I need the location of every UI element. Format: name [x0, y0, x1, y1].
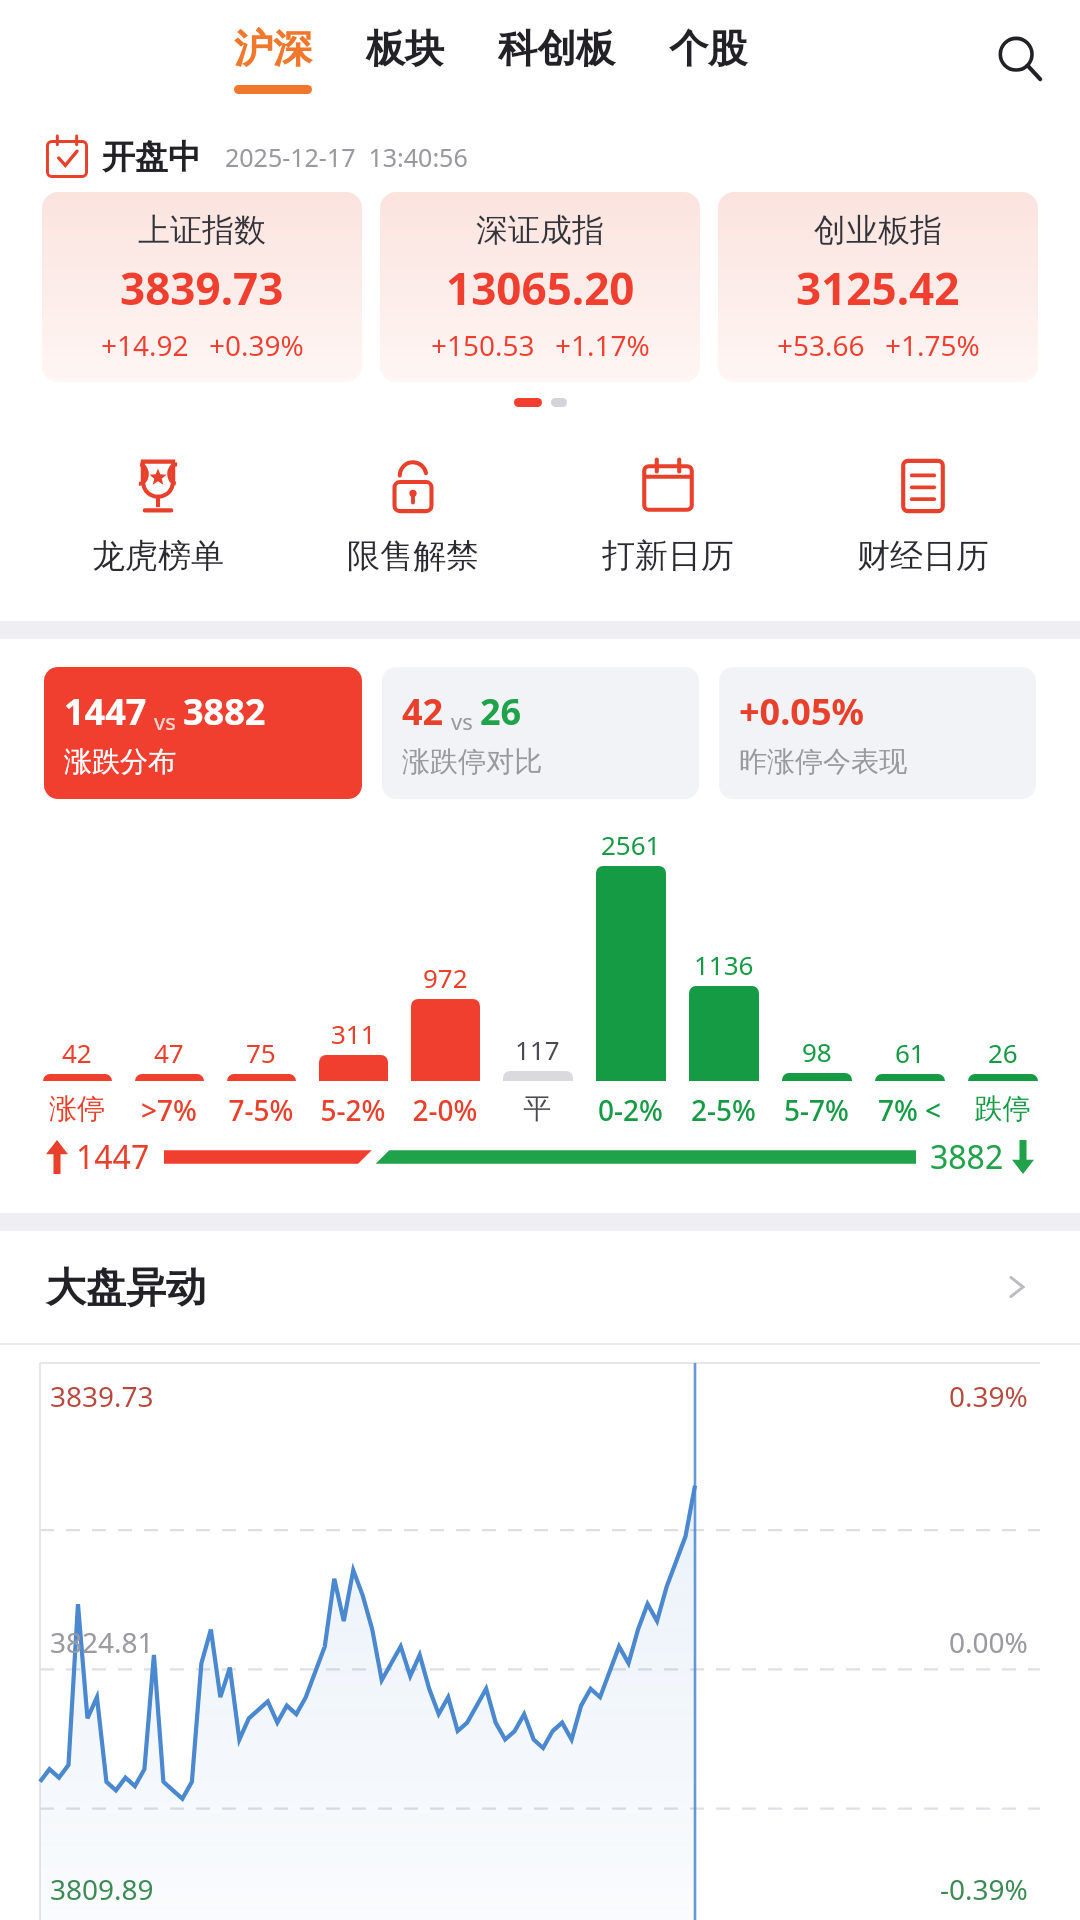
staticText: 涨跌分布 — [64, 744, 176, 779]
button[interactable]: 打新日历 — [540, 449, 795, 581]
staticText: +0.05% — [739, 687, 864, 736]
staticText: 0.39% — [949, 1377, 1028, 1415]
button[interactable]: Search — [984, 23, 1056, 95]
staticText: 涨跌停对比 — [402, 744, 542, 779]
staticText: 财经日历 — [857, 535, 989, 577]
button[interactable]: 沪深 — [230, 24, 316, 94]
staticText: +53.66 — [777, 326, 865, 364]
staticText: 61 — [895, 1035, 925, 1070]
staticText: 1136 — [694, 947, 754, 982]
staticText: +1.75% — [885, 326, 980, 364]
staticText: 42 — [62, 1035, 92, 1070]
button[interactable]: 财经日历 — [795, 449, 1050, 581]
staticText: +14.92 — [101, 326, 189, 364]
button[interactable]: 限售解禁 — [285, 449, 540, 581]
staticText: 平 — [494, 1091, 581, 1126]
staticText: 1447 — [64, 687, 147, 736]
staticText: 0-2% — [587, 1091, 674, 1129]
staticText: 3882 — [183, 687, 266, 736]
staticText: 311 — [331, 1016, 376, 1051]
button[interactable]: 42 — [382, 667, 699, 799]
staticText: 跌停 — [959, 1091, 1046, 1126]
staticText: 沪深 — [234, 24, 312, 73]
staticText: 3824.81 — [50, 1623, 154, 1661]
button[interactable]: 个股 — [665, 24, 751, 94]
staticText: 2025-12-17 13:40:56 — [225, 140, 468, 174]
staticText: +1.17% — [555, 326, 650, 364]
button[interactable]: 大盘异动 — [0, 1231, 1080, 1343]
staticText: +0.39% — [209, 326, 304, 364]
button[interactable]: 板块 — [362, 24, 448, 94]
staticText: 3839.73 — [120, 258, 284, 318]
staticText: vs — [451, 706, 473, 736]
button[interactable]: 深证成指 — [380, 192, 700, 382]
button[interactable]: +0.05% — [719, 667, 1036, 799]
staticText: >7% — [126, 1091, 212, 1129]
staticText: 0.00% — [949, 1623, 1028, 1661]
staticText: 上证指数 — [138, 210, 266, 250]
staticText: 98 — [802, 1034, 832, 1069]
staticText: 2-5% — [680, 1091, 767, 1129]
staticText: 75 — [246, 1035, 276, 1070]
staticText: 42 — [402, 687, 444, 736]
button[interactable]: 1447 — [44, 667, 362, 799]
staticText: 限售解禁 — [347, 535, 479, 577]
staticText: 7-5% — [218, 1091, 304, 1129]
staticText: 972 — [423, 960, 468, 995]
staticText: 26 — [988, 1035, 1018, 1070]
staticText: 深证成指 — [476, 210, 604, 250]
staticText: 3809.89 — [50, 1870, 154, 1908]
staticText: 大盘异动 — [46, 1262, 206, 1312]
staticText: 打新日历 — [602, 535, 734, 577]
staticText: 13065.20 — [446, 258, 635, 318]
staticText: 涨停 — [34, 1091, 120, 1126]
staticText: 龙虎榜单 — [92, 535, 224, 577]
staticText: 个股 — [669, 24, 747, 73]
button[interactable]: 创业板指 — [718, 192, 1038, 382]
staticText: 创业板指 — [814, 210, 942, 250]
staticText: 3125.42 — [796, 258, 960, 318]
staticText: 3839.73 — [50, 1377, 154, 1415]
staticText: vs — [154, 706, 176, 736]
staticText: 昨涨停今表现 — [739, 744, 907, 779]
button[interactable]: 龙虎榜单 — [30, 449, 285, 581]
staticText: 26 — [480, 687, 522, 736]
staticText: 3882 — [930, 1135, 1004, 1179]
staticText: +150.53 — [431, 326, 535, 364]
staticText: 5-2% — [310, 1091, 396, 1129]
staticText: 117 — [515, 1032, 560, 1067]
staticText: 开盘中 — [102, 136, 201, 178]
staticText: -0.39% — [940, 1870, 1028, 1908]
staticText: 科创板 — [498, 24, 615, 73]
staticText: 7% < — [866, 1091, 953, 1129]
staticText: 板块 — [366, 24, 444, 73]
staticText: 1447 — [76, 1135, 150, 1179]
staticText: 2-0% — [402, 1091, 488, 1129]
button[interactable]: 科创板 — [494, 24, 619, 94]
staticText: 2561 — [601, 827, 661, 862]
staticText: 47 — [154, 1035, 184, 1070]
button[interactable]: 上证指数 — [42, 192, 362, 382]
staticText: 5-7% — [773, 1091, 860, 1129]
